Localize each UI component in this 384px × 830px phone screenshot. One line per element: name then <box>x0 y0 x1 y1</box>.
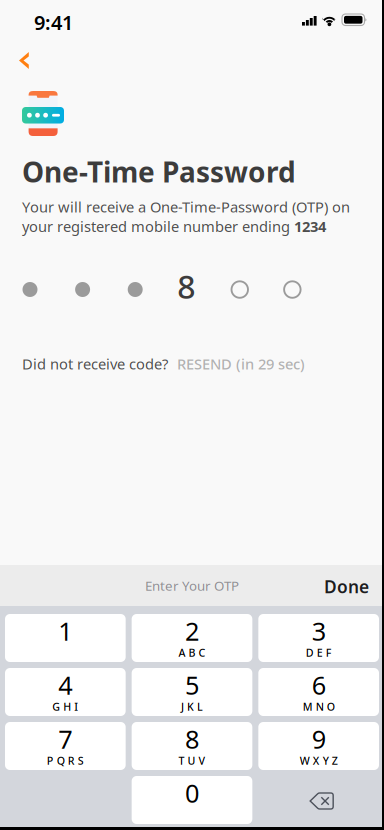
staticText: J K L <box>181 700 203 714</box>
button[interactable]: 6 <box>258 668 379 716</box>
staticText: A B C <box>178 646 205 660</box>
staticText: T U V <box>178 754 205 768</box>
staticText: W X Y Z <box>300 754 338 768</box>
button[interactable]: 1 <box>5 614 126 662</box>
staticText: 8 <box>185 722 199 756</box>
button[interactable]: Back <box>9 42 39 79</box>
staticText: 0 <box>185 776 199 810</box>
staticText: 9:41 <box>34 9 73 36</box>
staticText: RESEND (in 29 sec) <box>177 354 305 373</box>
staticText: One-Time Password <box>22 153 296 190</box>
staticText: P Q R S <box>47 754 84 768</box>
staticText: 2 <box>185 614 199 648</box>
staticText: 4 <box>58 668 72 702</box>
button[interactable]: 9 <box>258 722 379 770</box>
button[interactable]: 3 <box>258 614 379 662</box>
staticText: 1 <box>58 614 72 648</box>
button[interactable]: 7 <box>5 722 126 770</box>
button[interactable]: 8 <box>132 722 252 770</box>
staticText: Done <box>324 575 369 598</box>
button[interactable]: Delete <box>258 776 379 824</box>
staticText: Your will receive a One-Time-Password (O… <box>22 197 350 236</box>
staticText: 3 <box>312 614 326 648</box>
staticText: D E F <box>306 646 332 660</box>
staticText: 8 <box>177 265 195 307</box>
staticText: 9 <box>312 722 326 756</box>
button[interactable]: 0 <box>132 776 252 824</box>
staticText: 7 <box>58 722 72 756</box>
staticText: 5 <box>185 668 199 702</box>
button[interactable]: Done <box>312 565 384 606</box>
staticText: Did not receive code? <box>22 354 168 373</box>
staticText: M N O <box>303 700 335 714</box>
button[interactable]: 5 <box>132 668 252 716</box>
button[interactable]: 4 <box>5 668 126 716</box>
staticText: G H I <box>52 700 78 714</box>
staticText: Enter Your OTP <box>145 577 239 594</box>
button[interactable]: 2 <box>132 614 252 662</box>
staticText: 6 <box>312 668 326 702</box>
button[interactable]: RESEND (in 29 sec) <box>177 354 305 373</box>
